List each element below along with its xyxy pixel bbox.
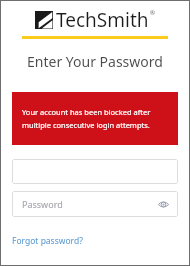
staticText: multiple consecutive login attempts.: [22, 120, 150, 130]
button[interactable]: [12, 159, 178, 184]
staticText: Forgot password?: [12, 235, 83, 247]
staticText: TechSmith: [56, 7, 149, 33]
staticText: ®: [150, 9, 155, 17]
button[interactable]: Forgot password?: [12, 235, 83, 247]
staticText: Enter Your Password: [27, 52, 163, 71]
button[interactable]: Password: [12, 191, 178, 217]
button[interactable]: Show password: [157, 198, 170, 211]
staticText: Your account has been blocked after: [22, 107, 151, 117]
staticText: Password: [22, 198, 63, 210]
